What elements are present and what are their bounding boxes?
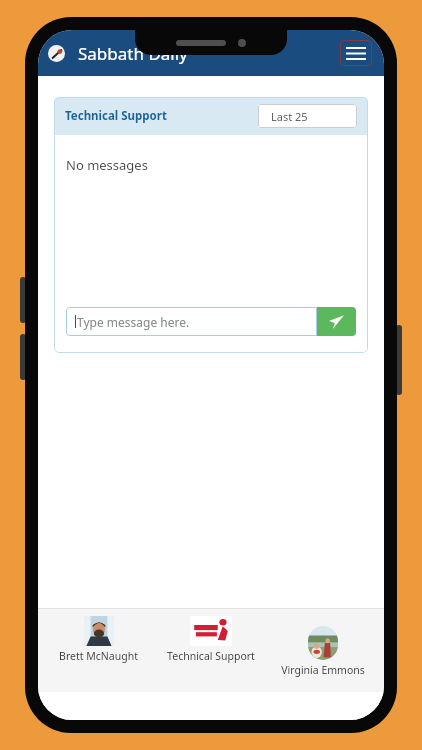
staticText: Technical Support (65, 108, 167, 124)
staticText: Sabbath Daily (78, 42, 188, 65)
staticText: Type message here. (77, 314, 190, 330)
button[interactable]: Last 25 (258, 104, 357, 128)
button[interactable]: Send (317, 307, 356, 336)
button[interactable]: Virginia Emmons (268, 626, 378, 677)
button[interactable]: Type message here. (66, 307, 317, 336)
staticText: Brett McNaught (59, 649, 138, 663)
button[interactable]: Technical Support (153, 616, 268, 663)
staticText: Last 25 (271, 109, 308, 124)
staticText: Virginia Emmons (281, 663, 365, 677)
button[interactable]: Brett McNaught (44, 616, 153, 663)
button[interactable]: Menu (340, 40, 372, 66)
staticText: Technical Support (167, 649, 255, 663)
staticText: No messages (66, 156, 148, 174)
